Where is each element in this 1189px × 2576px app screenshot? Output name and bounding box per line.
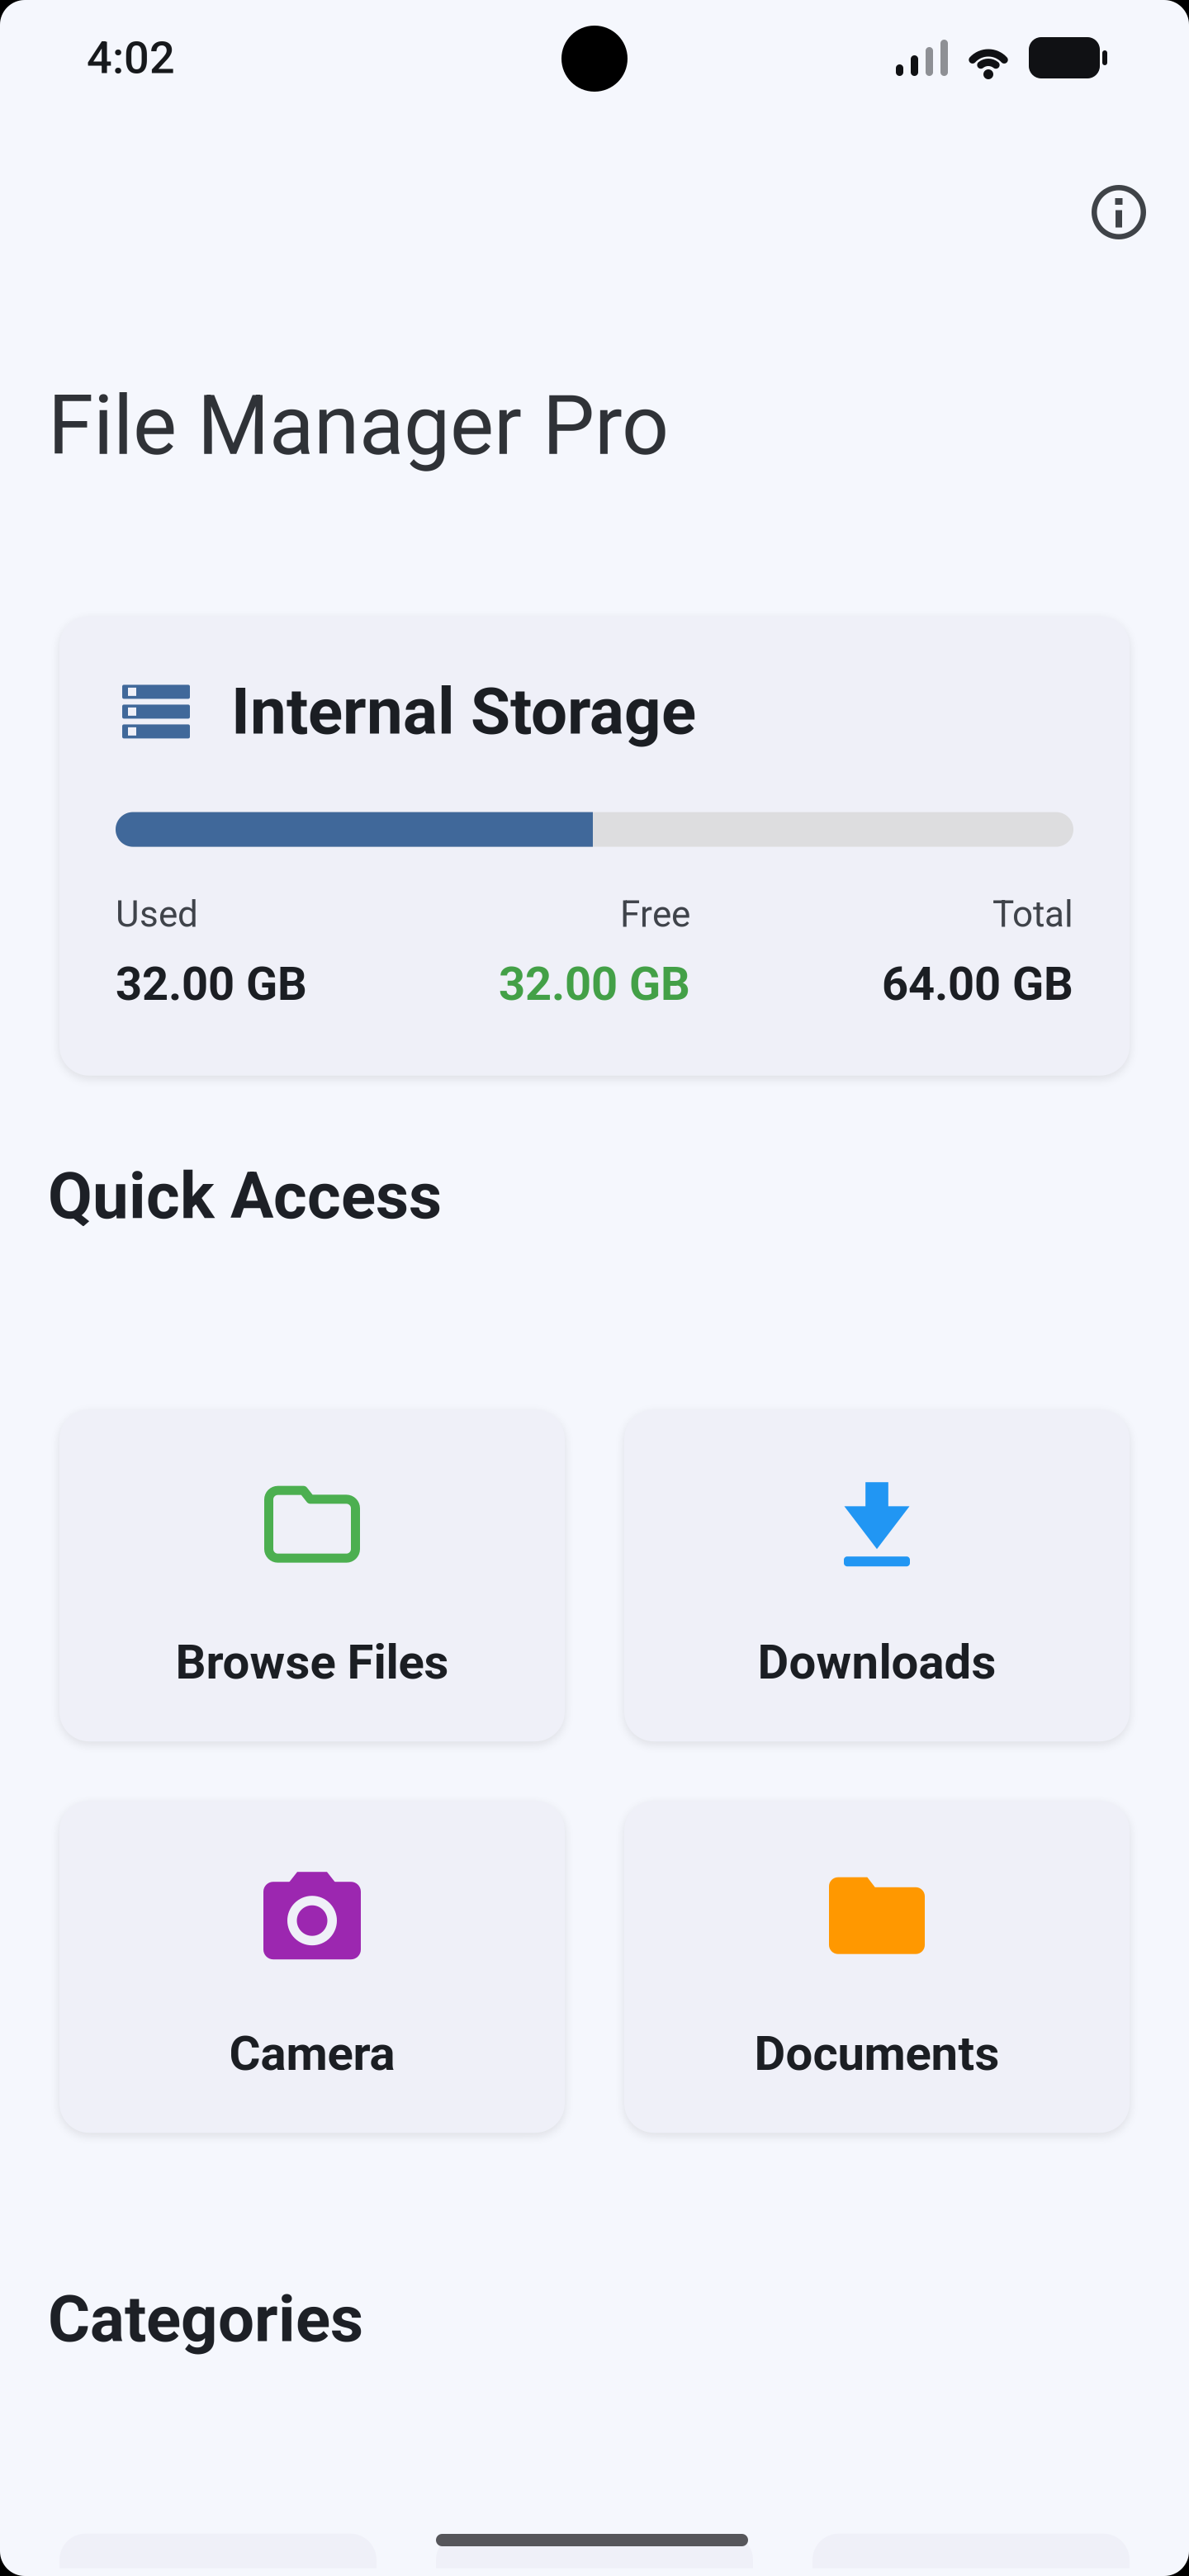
button[interactable]: About	[1092, 185, 1146, 239]
staticText: Documents	[754, 2025, 1000, 2082]
button[interactable]: Browse Files	[59, 1410, 565, 1741]
staticText: Categories	[48, 2281, 363, 2357]
staticText: Total	[992, 893, 1073, 936]
staticText: Camera	[229, 2025, 395, 2082]
staticText: Used	[116, 893, 198, 936]
button[interactable]: Category	[436, 2534, 753, 2568]
button[interactable]: Camera	[59, 1801, 565, 2133]
staticText: Quick Access	[48, 1158, 442, 1234]
button[interactable]: Documents	[624, 1801, 1130, 2133]
staticText: 64.00 GB	[882, 957, 1073, 1011]
staticText: 4:02	[87, 32, 175, 84]
button[interactable]: Downloads	[624, 1410, 1130, 1741]
staticText: Browse Files	[175, 1634, 449, 1690]
staticText: 32.00 GB	[116, 957, 307, 1011]
staticText: Internal Storage	[231, 674, 696, 749]
staticText: File Manager Pro	[48, 377, 669, 474]
staticText: Free	[620, 893, 690, 936]
staticText: 32.00 GB	[499, 957, 690, 1011]
staticText: Downloads	[758, 1634, 996, 1690]
